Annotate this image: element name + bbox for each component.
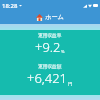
button[interactable]: ホーム (0, 11, 100, 24)
staticText: 運用収益率 (38, 32, 62, 38)
staticText: +6,421 (27, 69, 68, 87)
staticText: 円 (68, 81, 73, 86)
staticText: ホーム (45, 13, 64, 21)
staticText: 18:28 (2, 2, 18, 10)
staticText: % (61, 49, 65, 55)
staticText: 運用収益額 (38, 63, 62, 69)
staticText: +9.2 (35, 38, 61, 56)
